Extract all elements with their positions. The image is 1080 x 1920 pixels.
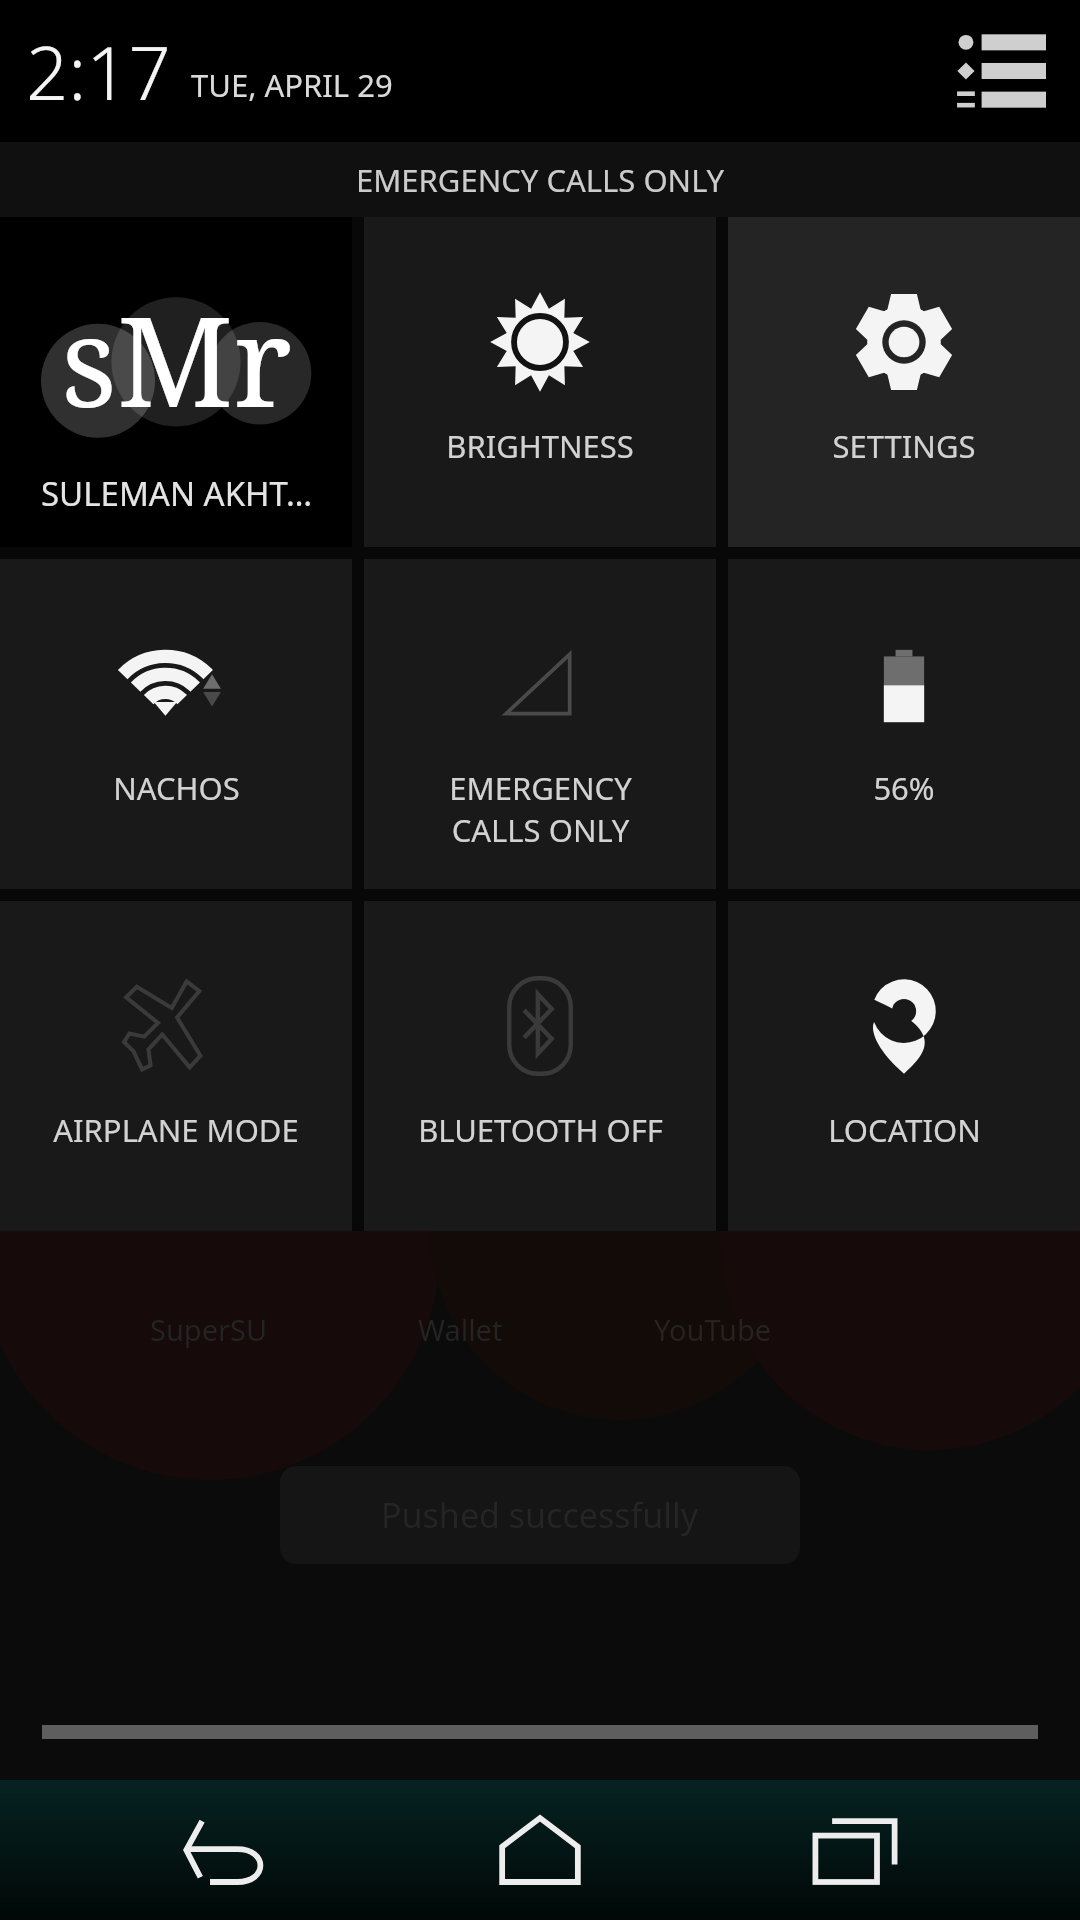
button[interactable]: Home bbox=[450, 1780, 630, 1920]
staticText: SETTINGS bbox=[832, 425, 976, 467]
button[interactable]: BLUETOOTH OFF bbox=[364, 901, 716, 1231]
button[interactable]: SETTINGS bbox=[728, 217, 1080, 547]
button[interactable]: NACHOS bbox=[0, 559, 352, 889]
staticText: 56% bbox=[873, 767, 935, 809]
staticText: AIRPLANE MODE bbox=[53, 1109, 299, 1151]
staticText: SULEMAN AKHT… bbox=[41, 471, 312, 516]
button[interactable]: EMERGENCY CALLS ONLY bbox=[364, 559, 716, 889]
staticText: NACHOS bbox=[113, 767, 240, 809]
staticText: YouTube bbox=[654, 1310, 772, 1349]
staticText: BRIGHTNESS bbox=[446, 425, 634, 467]
button[interactable]: BRIGHTNESS bbox=[364, 217, 716, 547]
staticText: LOCATION bbox=[828, 1109, 981, 1151]
button[interactable]: sMr bbox=[0, 217, 352, 547]
button[interactable]: LOCATION bbox=[728, 901, 1080, 1231]
button[interactable]: 56% bbox=[728, 559, 1080, 889]
button[interactable]: Notifications list bbox=[954, 28, 1046, 114]
staticText: 2:17 bbox=[26, 21, 171, 122]
staticText: sMr bbox=[61, 274, 292, 443]
staticText: SuperSU bbox=[150, 1310, 268, 1349]
staticText: BLUETOOTH OFF bbox=[418, 1109, 663, 1151]
button[interactable]: Back bbox=[135, 1780, 315, 1920]
staticText: TUE, APRIL 29 bbox=[191, 64, 393, 106]
staticText: Wallet bbox=[418, 1310, 503, 1349]
button[interactable]: Recent apps bbox=[765, 1780, 945, 1920]
staticText: EMERGENCY CALLS ONLY bbox=[449, 767, 632, 851]
staticText: EMERGENCY CALLS ONLY bbox=[356, 159, 725, 201]
button[interactable]: AIRPLANE MODE bbox=[0, 901, 352, 1231]
staticText: Pushed successfully bbox=[381, 1492, 699, 1538]
